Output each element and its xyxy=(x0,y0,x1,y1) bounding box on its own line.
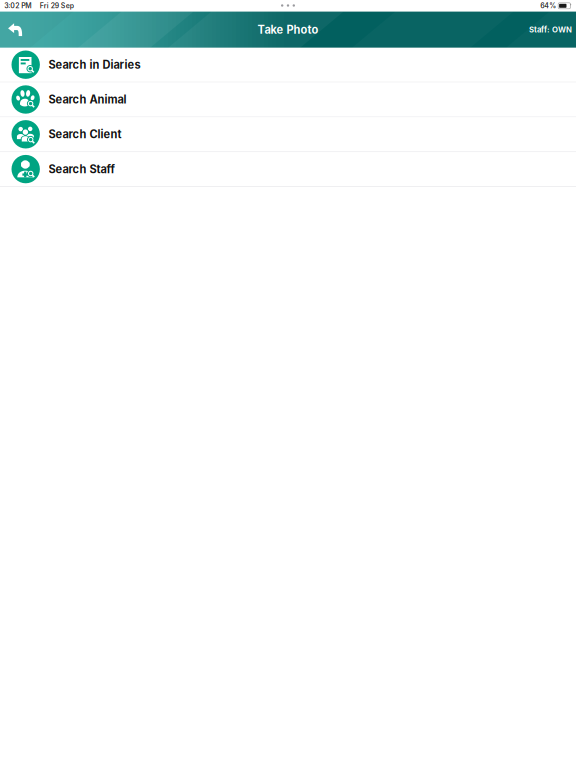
staticText: Fri 29 Sep xyxy=(40,2,74,10)
button[interactable]: Search Staff xyxy=(0,152,576,187)
button[interactable]: Back xyxy=(0,13,31,46)
button[interactable]: Staff: OWN xyxy=(529,17,576,42)
staticText: Search in Diaries xyxy=(49,58,141,71)
staticText: Search Client xyxy=(49,128,122,141)
staticText: Search Animal xyxy=(49,93,127,106)
button[interactable]: Search Animal xyxy=(0,83,576,117)
staticText: 64% xyxy=(540,2,556,10)
button[interactable]: Search in Diaries xyxy=(0,48,576,83)
button[interactable]: Search Client xyxy=(0,117,576,152)
staticText: Search Staff xyxy=(49,162,115,176)
staticText: Take Photo xyxy=(257,23,318,36)
staticText: 3:02 PM xyxy=(4,2,31,10)
staticText: Staff: OWN xyxy=(529,25,572,34)
